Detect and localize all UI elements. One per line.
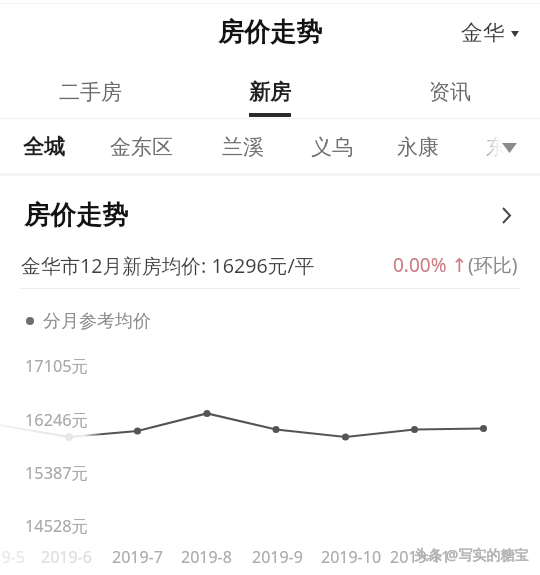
button[interactable]: 义乌: [311, 134, 353, 160]
button[interactable]: 资讯: [360, 0, 540, 118]
staticText: 二手房: [59, 79, 122, 105]
staticText: 17105元: [25, 355, 88, 377]
staticText: 15387元: [25, 462, 88, 484]
staticText: 2019-7: [112, 546, 163, 568]
staticText: 金华市12月新房均价: 16296元/平: [21, 252, 315, 279]
staticText: 东阳: [486, 134, 528, 160]
staticText: (环比): [468, 252, 518, 278]
staticText: 金东区: [110, 134, 173, 160]
button[interactable]: 二手房: [0, 0, 180, 118]
staticText: 兰溪: [222, 134, 264, 160]
staticText: 义乌: [311, 134, 353, 160]
staticText: 新房: [249, 79, 291, 105]
staticText: 永康: [397, 134, 439, 160]
button[interactable]: 房价走势: [0, 189, 540, 241]
staticText: 2019-8: [181, 546, 232, 568]
button[interactable]: 金东区: [110, 134, 173, 160]
staticText: 全城: [23, 134, 65, 160]
button[interactable]: 兰溪: [222, 134, 264, 160]
staticText: 16246元: [25, 409, 88, 431]
button[interactable]: 新房: [180, 0, 360, 118]
button[interactable]: 展开更多城区: [488, 119, 540, 174]
button[interactable]: 全城: [23, 134, 65, 160]
staticText: 2019-6: [41, 546, 92, 568]
staticText: 2019-10: [321, 546, 382, 568]
staticText: 金华: [461, 19, 505, 46]
staticText: 房价走势: [218, 16, 322, 49]
staticText: 2019-9: [252, 546, 303, 568]
button[interactable]: 永康: [397, 134, 439, 160]
button[interactable]: 金华: [447, 0, 540, 62]
staticText: 2019-5: [0, 546, 25, 568]
staticText: 14528元: [25, 515, 88, 537]
staticText: 资讯: [429, 79, 471, 105]
staticText: 分月参考均价: [43, 310, 151, 333]
staticText: 房价走势: [24, 199, 128, 232]
staticText: 2019-11: [390, 546, 451, 568]
button[interactable]: 东阳: [486, 134, 528, 160]
staticText: 头条 @写实的糖宝: [414, 545, 529, 564]
staticText: 0.00% ↑: [393, 252, 468, 278]
